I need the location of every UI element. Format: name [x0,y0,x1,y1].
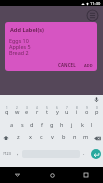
button[interactable]: z [12,131,24,143]
staticText: z [17,133,20,141]
staticText: u [65,108,69,116]
staticText: x [29,133,32,141]
button[interactable]: k [77,118,87,130]
button[interactable]: Home [35,167,69,183]
staticText: . [83,149,85,157]
staticText: 0 [96,106,98,110]
staticText: k [81,121,84,129]
staticText: 7 [66,106,68,110]
staticText: f [41,121,43,129]
button[interactable]: Menu [86,9,99,22]
button[interactable]: 8 [72,105,82,117]
staticText: ADD [84,63,93,68]
button[interactable]: Voice input [93,96,100,103]
button[interactable]: ADD [82,62,95,69]
staticText: o [85,108,89,116]
button[interactable]: v [47,131,58,143]
staticText: c [40,133,43,141]
button[interactable]: x [24,131,36,143]
staticText: h [60,121,64,129]
staticText: , [17,149,19,157]
staticText: l [91,121,93,129]
button[interactable]: f [37,118,47,130]
staticText: Add Label(s) [10,26,45,34]
button[interactable]: 4 [32,105,42,117]
button[interactable]: 3 [22,105,32,117]
button[interactable]: n [69,131,80,143]
staticText: p [95,108,99,116]
button[interactable]: , [14,147,22,160]
button[interactable]: Back [0,167,35,183]
button[interactable]: b [58,131,69,143]
staticText: CANCEL [58,62,76,68]
button[interactable]: 2 [12,105,22,117]
button[interactable]: l [87,118,97,130]
button[interactable]: h [57,118,67,130]
staticText: 5 [46,106,48,110]
button[interactable]: m [80,131,91,143]
staticText: a [10,121,14,129]
staticText: v [51,133,54,141]
staticText: i [76,108,78,116]
button[interactable]: 5 [42,105,52,117]
staticText: y [56,108,59,116]
staticText: Bread 2 [9,49,29,56]
staticText: d [30,121,34,129]
button[interactable]: Shift [0,131,12,143]
staticText: t [46,108,49,116]
staticText: q [5,108,9,116]
button[interactable]: c [36,131,47,143]
staticText: 8 [76,106,78,110]
button[interactable]: . [80,147,88,160]
staticText: Apples 5 [9,43,31,50]
button[interactable]: Enter [91,149,101,159]
button[interactable]: 7 [62,105,72,117]
button[interactable]: a [6,118,17,130]
button[interactable]: 9 [82,105,92,117]
button[interactable]: d [27,118,37,130]
staticText: m [83,133,89,141]
button[interactable]: 1 [1,105,12,117]
staticText: w [15,108,20,116]
button[interactable]: CANCEL [56,61,78,69]
staticText: ?123 [3,151,11,156]
button[interactable]: s [17,118,27,130]
staticText: j [71,121,73,129]
staticText: 4 [36,106,38,110]
staticText: 9 [86,106,88,110]
staticText: g [50,121,54,129]
button[interactable]: g [47,118,57,130]
staticText: 2 [16,106,18,110]
staticText: 11:30 [90,1,101,6]
staticText: r [36,108,39,116]
button[interactable]: Backspace [91,131,103,143]
staticText: 6 [56,106,58,110]
button[interactable]: j [67,118,77,130]
button[interactable]: 6 [52,105,62,117]
button[interactable]: Recents [69,167,103,183]
button[interactable]: 0 [92,105,102,117]
staticText: e [25,108,29,116]
staticText: 1 [6,106,8,110]
staticText: s [21,121,24,129]
button[interactable]: ?123 [0,147,14,160]
staticText: n [73,133,77,141]
staticText: b [62,133,66,141]
staticText: Eggs 10 [9,37,29,44]
staticText: 3 [26,106,28,110]
